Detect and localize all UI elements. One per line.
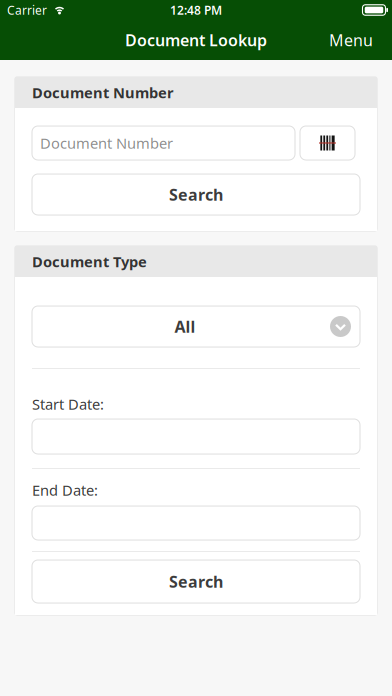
staticText: Document Type — [32, 252, 147, 271]
staticText: Carrier — [7, 2, 47, 18]
staticText: All — [174, 316, 195, 337]
staticText: End Date: — [32, 480, 98, 500]
staticText: Document Lookup — [125, 29, 267, 51]
button[interactable]: Search — [32, 174, 360, 215]
staticText: Document Number — [32, 83, 174, 102]
staticText: Search — [169, 184, 223, 205]
button[interactable]: Menu — [319, 20, 383, 60]
staticText: Menu — [329, 29, 373, 51]
staticText: Search — [169, 571, 223, 592]
button[interactable]: Search — [32, 560, 360, 603]
button[interactable]: Scan barcode — [300, 126, 355, 160]
button[interactable]: All — [32, 306, 360, 347]
staticText: Document Number — [40, 133, 173, 153]
staticText: 12:48 PM — [170, 2, 222, 18]
staticText: Start Date: — [32, 394, 104, 414]
